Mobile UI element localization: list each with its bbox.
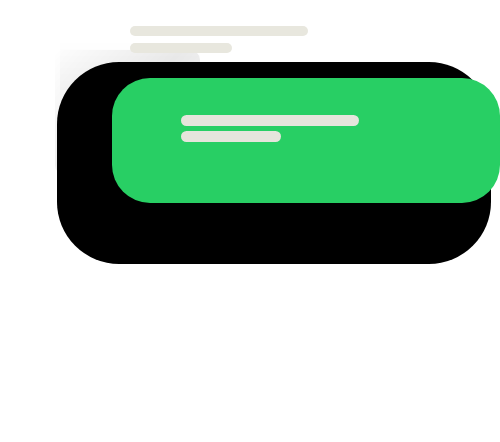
button[interactable]: Background card bbox=[57, 62, 491, 264]
button[interactable]: Primary card bbox=[112, 78, 500, 203]
